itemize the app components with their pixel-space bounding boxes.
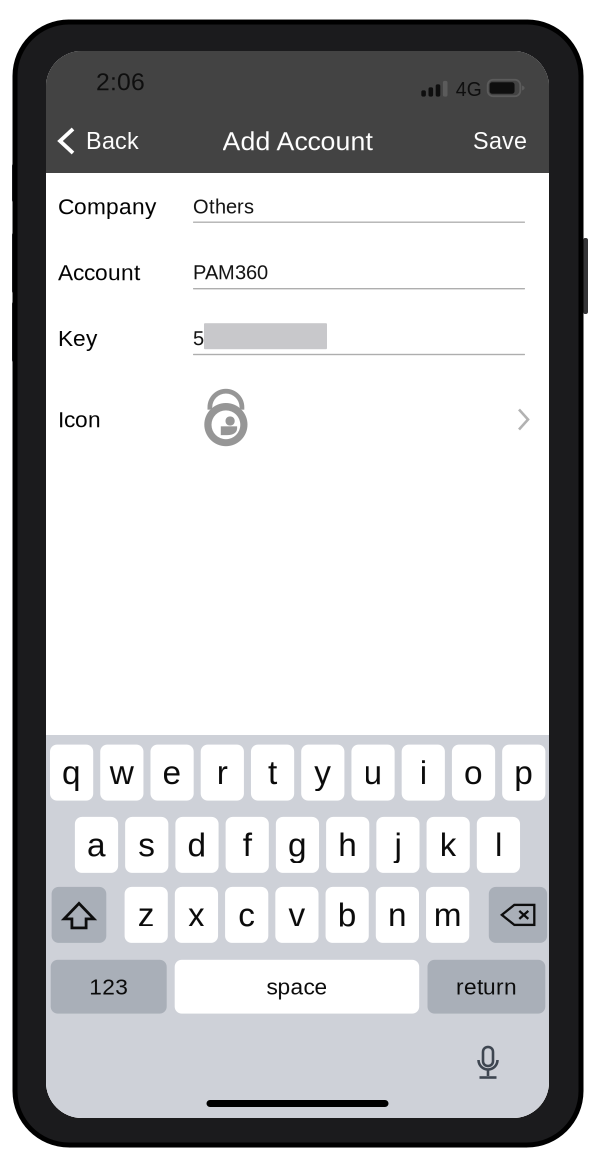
button[interactable]: i	[402, 745, 445, 801]
button[interactable]: w	[100, 745, 143, 801]
button[interactable]: Shift	[52, 887, 106, 943]
button[interactable]: return	[427, 960, 545, 1014]
button[interactable]: Back	[46, 109, 151, 173]
staticText: Company	[58, 194, 156, 219]
button[interactable]: j	[376, 817, 419, 873]
staticText: m	[434, 896, 462, 933]
button[interactable]: Dictation	[475, 1043, 501, 1083]
button[interactable]: e	[150, 745, 194, 801]
button[interactable]: p	[502, 745, 545, 801]
button[interactable]: v	[275, 887, 318, 943]
button[interactable]: l	[477, 817, 520, 873]
staticText: u	[363, 754, 382, 791]
button[interactable]: x	[175, 887, 218, 943]
button[interactable]: r	[201, 745, 244, 801]
staticText: k	[440, 826, 457, 863]
staticText: q	[62, 754, 81, 791]
button[interactable]: m	[426, 887, 469, 943]
staticText: l	[495, 826, 502, 863]
staticText: Others	[193, 195, 254, 218]
staticText: Back	[86, 128, 139, 154]
button[interactable]: f	[226, 817, 269, 873]
staticText: n	[388, 896, 407, 933]
button[interactable]: k	[427, 817, 470, 873]
button[interactable]: q	[50, 745, 93, 801]
staticText: w	[110, 754, 134, 791]
staticText: d	[187, 826, 206, 863]
staticText: i	[420, 754, 427, 791]
button[interactable]: space	[175, 960, 419, 1014]
staticText: Icon	[58, 407, 101, 432]
staticText: g	[288, 826, 307, 863]
staticText: x	[188, 896, 205, 933]
button[interactable]: u	[351, 745, 395, 801]
button[interactable]: d	[175, 817, 219, 873]
button[interactable]: y	[301, 745, 344, 801]
staticText: e	[163, 754, 182, 791]
button[interactable]: g	[276, 817, 319, 873]
staticText: 2:06	[96, 68, 145, 96]
staticText: Key	[58, 325, 97, 351]
staticText: 123	[89, 974, 128, 999]
staticText: h	[338, 826, 357, 863]
staticText: f	[243, 826, 252, 863]
button[interactable]: h	[326, 817, 369, 873]
button[interactable]: t	[251, 745, 294, 801]
button[interactable]: b	[326, 887, 369, 943]
staticText: z	[138, 896, 155, 933]
staticText: PAM360	[193, 261, 268, 283]
staticText: 4G	[456, 78, 482, 100]
button[interactable]: Delete	[489, 887, 547, 943]
staticText: a	[87, 826, 106, 863]
staticText: Save	[473, 128, 527, 154]
staticText: s	[138, 826, 155, 863]
button[interactable]: z	[125, 887, 168, 943]
staticText: space	[266, 974, 327, 999]
button[interactable]: Icon	[46, 378, 549, 460]
staticText: y	[314, 754, 331, 791]
staticText: t	[268, 754, 277, 791]
button[interactable]: n	[376, 887, 419, 943]
staticText: Add Account	[222, 126, 372, 156]
staticText: Account	[58, 260, 140, 285]
staticText: p	[514, 754, 533, 791]
staticText: j	[394, 826, 401, 863]
button[interactable]: a	[75, 817, 118, 873]
button[interactable]: Save	[461, 109, 539, 173]
staticText: return	[456, 974, 517, 999]
staticText: v	[288, 896, 305, 933]
staticText: 5	[193, 327, 204, 349]
button[interactable]: s	[125, 817, 168, 873]
button[interactable]: c	[225, 887, 268, 943]
button[interactable]: o	[452, 745, 495, 801]
staticText: b	[338, 896, 357, 933]
staticText: o	[464, 754, 483, 791]
button[interactable]: 123	[51, 960, 167, 1014]
staticText: c	[238, 896, 255, 933]
staticText: r	[217, 754, 228, 791]
